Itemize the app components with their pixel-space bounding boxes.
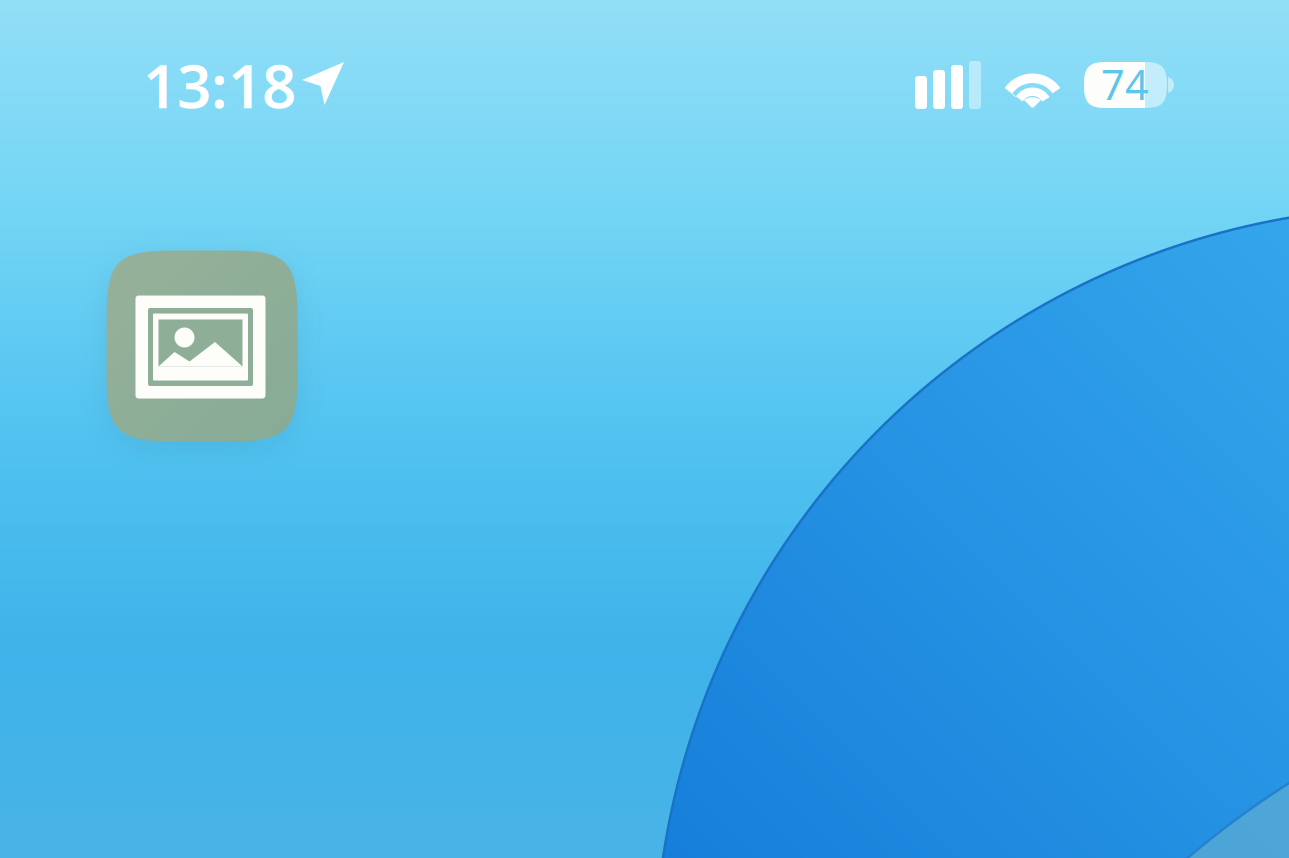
button[interactable]: Photos xyxy=(106,250,297,441)
staticText: 13:18 xyxy=(143,45,296,125)
staticText: 74 xyxy=(1101,57,1149,111)
